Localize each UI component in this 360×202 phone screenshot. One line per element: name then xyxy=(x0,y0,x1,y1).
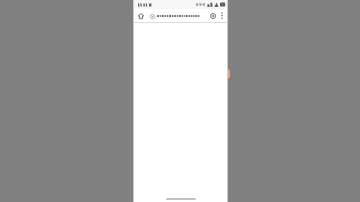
button[interactable]: Home xyxy=(136,11,146,21)
button[interactable]: Home gesture xyxy=(166,198,196,200)
button[interactable]: Reload xyxy=(208,11,218,21)
button[interactable]: More options xyxy=(218,10,225,21)
button[interactable] xyxy=(147,11,207,21)
